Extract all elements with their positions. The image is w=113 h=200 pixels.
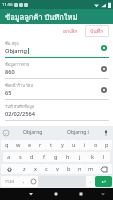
staticText: l xyxy=(103,153,105,161)
staticText: วันที่ บันทึกข้อมูล xyxy=(5,103,35,109)
staticText: r xyxy=(39,141,42,149)
staticText: ข้อมูลลูกค้า บันทึกใหม่ xyxy=(5,11,78,23)
staticText: ?123 xyxy=(5,179,15,185)
button[interactable]: q xyxy=(1,140,13,150)
staticText: u xyxy=(72,141,76,149)
button[interactable]: v xyxy=(52,164,63,174)
staticText: บันทึก xyxy=(90,27,104,35)
button[interactable]: h xyxy=(62,152,74,162)
button[interactable]: ?123 xyxy=(1,176,19,187)
button[interactable]: Back xyxy=(19,188,43,200)
button[interactable]: Voice input xyxy=(101,128,111,138)
button[interactable]: j xyxy=(74,152,86,162)
staticText: s xyxy=(19,153,22,161)
staticText: Objarng xyxy=(23,129,43,136)
button[interactable]: o xyxy=(90,140,101,150)
staticText: m xyxy=(88,165,94,173)
staticText: 11:55 xyxy=(2,2,13,8)
staticText: w xyxy=(16,141,21,149)
button[interactable]: Enter xyxy=(95,176,112,187)
button[interactable]: t xyxy=(46,140,57,150)
button[interactable]: ยกเลิก xyxy=(59,25,82,37)
button[interactable]: d xyxy=(26,152,38,162)
staticText: d xyxy=(30,153,34,161)
button[interactable]: Recent apps xyxy=(68,188,93,200)
button[interactable]: ชื่อ-สกุล xyxy=(0,37,113,58)
button[interactable]: u xyxy=(68,140,79,150)
button[interactable]: Emoji xyxy=(28,176,38,187)
button[interactable]: a xyxy=(3,152,14,162)
staticText: . xyxy=(90,178,92,185)
button[interactable]: Hide keyboard xyxy=(93,188,113,200)
staticText: x xyxy=(34,165,37,173)
button[interactable]: f xyxy=(38,152,50,162)
staticText: 860 xyxy=(5,68,15,76)
button[interactable]: More suggestions xyxy=(2,129,10,137)
button[interactable]: c xyxy=(41,164,52,174)
staticText: b xyxy=(67,165,71,173)
staticText: Objarng i xyxy=(67,129,89,136)
button[interactable]: บันทึก xyxy=(85,25,109,37)
button[interactable]: Home xyxy=(43,188,68,200)
button[interactable]: g xyxy=(50,152,62,162)
staticText: p xyxy=(105,141,109,149)
staticText: a xyxy=(7,153,11,161)
staticText: ชื่อหน้าร้าน ใหม่ xyxy=(5,82,34,88)
button[interactable]: z xyxy=(18,164,30,174)
staticText: z xyxy=(23,165,26,173)
staticText: v xyxy=(56,165,59,173)
staticText: f xyxy=(43,153,45,161)
button[interactable]: n xyxy=(74,164,85,174)
button[interactable]: b xyxy=(63,164,74,174)
button[interactable]: k xyxy=(86,152,98,162)
button[interactable]: Objarng xyxy=(10,129,55,136)
staticText: c xyxy=(45,165,48,173)
button[interactable]: i xyxy=(79,140,90,150)
staticText: g xyxy=(54,153,58,161)
staticText: k xyxy=(91,153,94,161)
staticText: > xyxy=(5,131,8,136)
button[interactable]: Select option xyxy=(98,63,109,74)
staticText: , xyxy=(23,178,25,185)
button[interactable]: y xyxy=(57,140,68,150)
staticText: ยกเลิก xyxy=(63,27,78,35)
button[interactable]: วันที่ บันทึกข้อมูล xyxy=(0,100,113,121)
staticText: h xyxy=(66,153,70,161)
button[interactable]: Select option xyxy=(98,84,109,95)
button[interactable]: p xyxy=(101,140,112,150)
button[interactable]: w xyxy=(13,140,24,150)
staticText: 65 xyxy=(5,89,12,97)
staticText: o xyxy=(94,141,98,149)
staticText: t xyxy=(50,141,53,149)
staticText: n xyxy=(78,165,82,173)
staticText: q xyxy=(5,141,9,149)
staticText: Objarng xyxy=(5,47,27,55)
button[interactable]: , xyxy=(19,176,28,187)
staticText: 02/02/2564 xyxy=(5,110,35,118)
button[interactable]: m xyxy=(85,164,96,174)
button[interactable]: ข้อมูลการขาย xyxy=(0,58,113,79)
button[interactable]: e xyxy=(24,140,35,150)
staticText: j xyxy=(79,153,81,161)
staticText: ข้อมูลการขาย xyxy=(5,61,30,67)
button[interactable]: x xyxy=(30,164,41,174)
button[interactable]: Select option xyxy=(98,42,109,53)
staticText: y xyxy=(61,141,64,149)
button[interactable]: . xyxy=(86,176,95,187)
button[interactable]: r xyxy=(35,140,46,150)
staticText: e xyxy=(28,141,32,149)
button[interactable]: Shift xyxy=(1,164,18,174)
staticText: ชื่อ-สกุล xyxy=(5,40,19,46)
button[interactable]: ชื่อหน้าร้าน ใหม่ xyxy=(0,79,113,100)
button[interactable]: s xyxy=(14,152,26,162)
button[interactable]: l xyxy=(98,152,110,162)
staticText: i xyxy=(84,141,86,149)
button[interactable]: Backspace xyxy=(96,164,112,174)
button[interactable]: Objarng i xyxy=(55,129,101,136)
